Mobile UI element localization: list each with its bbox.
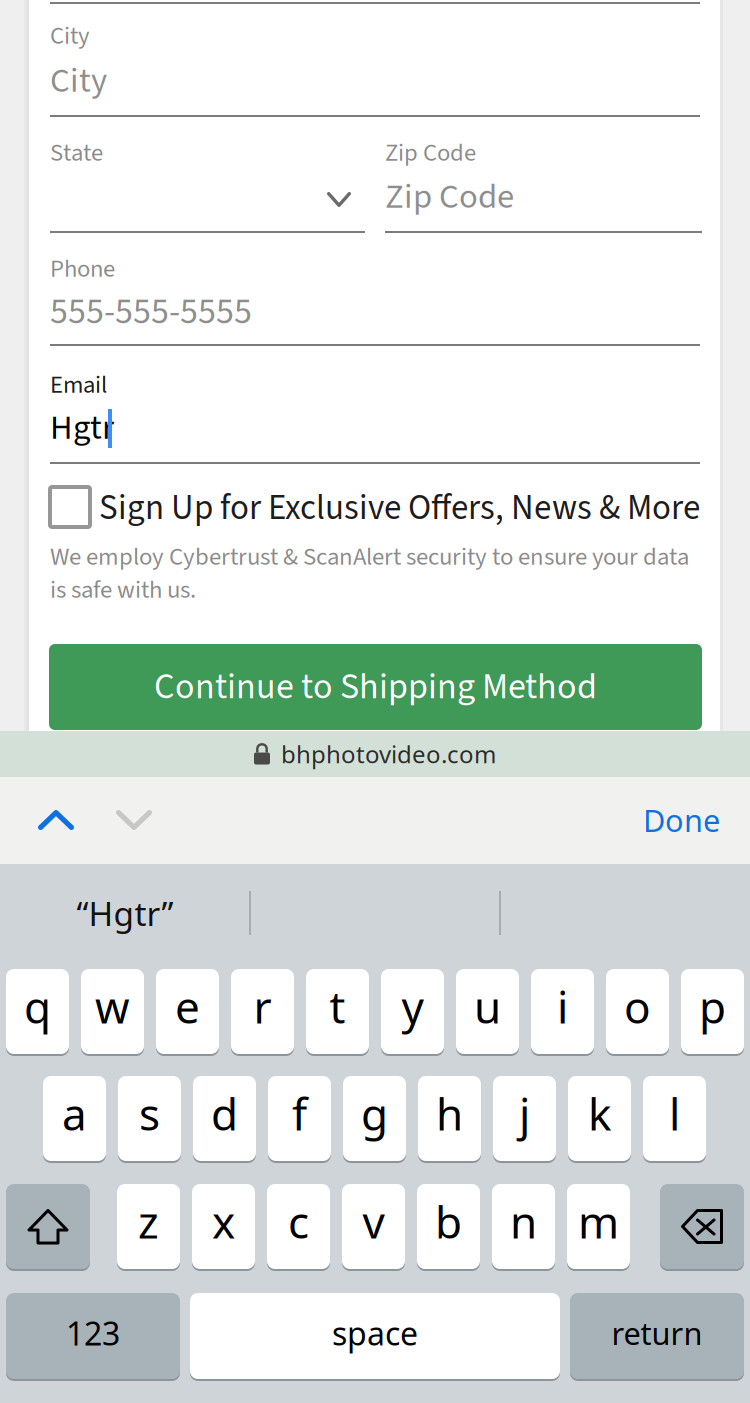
button[interactable]: Previous field [0,777,750,864]
staticText: b [435,1192,462,1251]
button[interactable]: f [268,1076,331,1161]
button[interactable]: Sign Up for Exclusive Offers, News & Mor… [0,0,750,1403]
button[interactable]: z [117,1184,180,1269]
staticText: h [436,1084,463,1143]
staticText: City [50,56,107,106]
button[interactable]: r [231,969,294,1054]
button[interactable]: s [118,1076,181,1161]
staticText: g [361,1084,388,1143]
staticText: State [50,135,103,170]
button[interactable]: a [43,1076,106,1161]
staticText: y [401,977,423,1036]
staticText: m [578,1192,619,1251]
staticText: k [588,1084,611,1143]
button[interactable]: Continue to Shipping Method [49,644,702,730]
staticText: u [474,977,501,1036]
staticText: w [95,977,130,1036]
staticText: space [332,1312,418,1354]
staticText: Zip Code [385,135,476,170]
button[interactable]: g [343,1076,406,1161]
button[interactable]: i [531,969,594,1054]
button[interactable]: y [381,969,444,1054]
button[interactable]: u [456,969,519,1054]
staticText: “Hgtr” [76,891,173,935]
staticText: l [669,1084,680,1143]
staticText: p [699,977,726,1036]
staticText: is safe with us. [50,572,196,608]
staticText: 555-555-5555 [50,286,252,338]
button[interactable]: Done [0,777,750,864]
staticText: s [139,1084,160,1143]
button[interactable]: n [492,1184,555,1269]
staticText: Sign Up for Exclusive Offers, News & Mor… [99,483,700,533]
staticText: t [329,977,345,1036]
staticText: a [62,1084,87,1143]
staticText: d [211,1084,238,1143]
staticText: Continue to Shipping Method [154,661,597,713]
staticText: Done [643,800,720,840]
staticText: We employ Cybertrust & ScanAlert securit… [50,539,689,575]
button[interactable]: o [606,969,669,1054]
button[interactable]: w [81,969,144,1054]
button[interactable]: Delete [660,1184,744,1269]
staticText: e [175,977,200,1036]
button[interactable]: space [190,1293,560,1379]
staticText: v [362,1192,384,1251]
staticText: Zip Code [385,172,514,222]
staticText: x [212,1192,235,1251]
button[interactable]: v [342,1184,405,1269]
staticText: r [253,977,271,1036]
button[interactable]: b [417,1184,480,1269]
staticText: o [624,977,651,1036]
button[interactable]: p [681,969,744,1054]
staticText: f [292,1084,307,1143]
staticText: q [24,977,51,1036]
button[interactable]: d [193,1076,256,1161]
button[interactable]: c [267,1184,330,1269]
staticText: Hgtr [50,403,114,453]
staticText: 123 [66,1312,120,1354]
staticText: Email [50,367,107,402]
button[interactable]: 123 [6,1293,180,1379]
staticText: c [288,1192,309,1251]
button[interactable]: l [643,1076,706,1161]
button[interactable]: x [192,1184,255,1269]
staticText: j [519,1084,530,1143]
button[interactable]: q [6,969,69,1054]
button[interactable]: k [568,1076,631,1161]
staticText: n [510,1192,537,1251]
button[interactable]: e [156,969,219,1054]
button[interactable]: m [567,1184,630,1269]
staticText: City [50,18,90,53]
button[interactable]: h [418,1076,481,1161]
button[interactable]: t [306,969,369,1054]
staticText: Phone [50,251,115,286]
button[interactable]: j [493,1076,556,1161]
button[interactable]: Shift [6,1184,90,1269]
staticText: return [611,1313,702,1353]
staticText: z [138,1192,159,1251]
button[interactable]: Next field [0,777,750,864]
staticText: i [557,977,568,1036]
button[interactable]: return [570,1293,744,1379]
staticText: bhphotovideo.com [281,738,496,770]
